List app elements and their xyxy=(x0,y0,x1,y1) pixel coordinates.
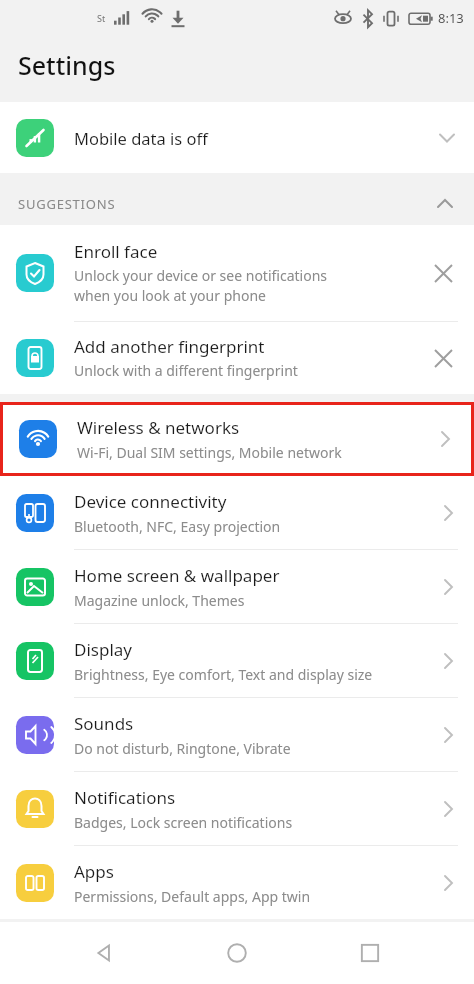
staticText: Permissions, Default apps, App twin xyxy=(74,887,311,906)
button[interactable]: Device connectivity xyxy=(0,476,474,549)
button[interactable]: Add another fingerprint xyxy=(0,322,474,394)
staticText: when you look at your phone xyxy=(74,286,266,305)
staticText: Unlock with a different fingerprint xyxy=(74,361,298,380)
staticText: St xyxy=(97,12,106,24)
button[interactable]: Mobile data is off xyxy=(0,102,474,173)
button[interactable]: Dismiss Add another fingerprint xyxy=(428,343,458,373)
button[interactable]: Recent apps xyxy=(342,925,398,981)
button[interactable]: Back xyxy=(77,925,133,981)
staticText: Notifications xyxy=(74,786,176,809)
other: Collapse suggestions xyxy=(434,193,456,215)
button[interactable]: Notifications xyxy=(0,772,474,845)
staticText: Enroll face xyxy=(74,240,158,263)
staticText: Sounds xyxy=(74,712,134,735)
staticText: Apps xyxy=(74,860,114,883)
staticText: Display xyxy=(74,638,132,661)
staticText: Brightness, Eye comfort, Text and displa… xyxy=(74,665,373,684)
button[interactable]: Enroll face xyxy=(0,225,474,321)
staticText: 8:13 xyxy=(438,9,464,27)
button[interactable]: Display xyxy=(0,624,474,697)
staticText: Wi-Fi, Dual SIM settings, Mobile network xyxy=(77,443,342,462)
staticText: Device connectivity xyxy=(74,490,227,513)
button[interactable]: Home screen & wallpaper xyxy=(0,550,474,623)
staticText: Bluetooth, NFC, Easy projection xyxy=(74,517,281,536)
staticText: Settings xyxy=(18,48,116,82)
staticText: Magazine unlock, Themes xyxy=(74,591,245,610)
button[interactable]: Home xyxy=(209,925,265,981)
staticText: Wireless & networks xyxy=(77,416,240,439)
button[interactable]: Sounds xyxy=(0,698,474,771)
staticText: Mobile data is off xyxy=(74,127,208,149)
staticText: Home screen & wallpaper xyxy=(74,564,280,587)
button[interactable]: Apps xyxy=(0,846,474,919)
staticText: Badges, Lock screen notifications xyxy=(74,813,293,832)
button[interactable]: Wireless & networks xyxy=(3,405,471,473)
button[interactable]: Dismiss Enroll face xyxy=(428,258,458,288)
staticText: Do not disturb, Ringtone, Vibrate xyxy=(74,739,291,758)
staticText: Unlock your device or see notifications xyxy=(74,266,328,285)
staticText: SUGGESTIONS xyxy=(18,195,116,213)
button[interactable]: SUGGESTIONS xyxy=(0,183,474,225)
staticText: Add another fingerprint xyxy=(74,335,265,358)
